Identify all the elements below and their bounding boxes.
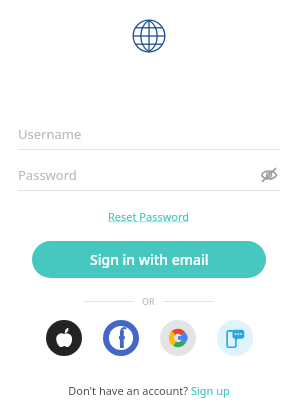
staticText: OR [142,295,155,307]
button[interactable]: Reset Password [102,207,196,226]
button[interactable]: Sign in with email [32,241,266,278]
staticText: Sign in with email [90,250,209,269]
button[interactable]: Password [18,162,280,188]
button[interactable]: Sign in with Facebook [103,320,139,356]
staticText: Don't have an account? Sign up [68,383,230,398]
button[interactable]: Username [18,121,280,147]
staticText: Reset Password [108,209,190,224]
button[interactable]: Show password [258,164,280,186]
staticText: Password [18,166,258,184]
button[interactable]: Sign in with SMS [217,320,253,356]
button[interactable]: Sign in with Apple [46,320,82,356]
button[interactable]: Don't have an account? Sign up [64,379,234,402]
button[interactable]: Sign in with Google [160,320,196,356]
staticText: Username [18,125,82,143]
